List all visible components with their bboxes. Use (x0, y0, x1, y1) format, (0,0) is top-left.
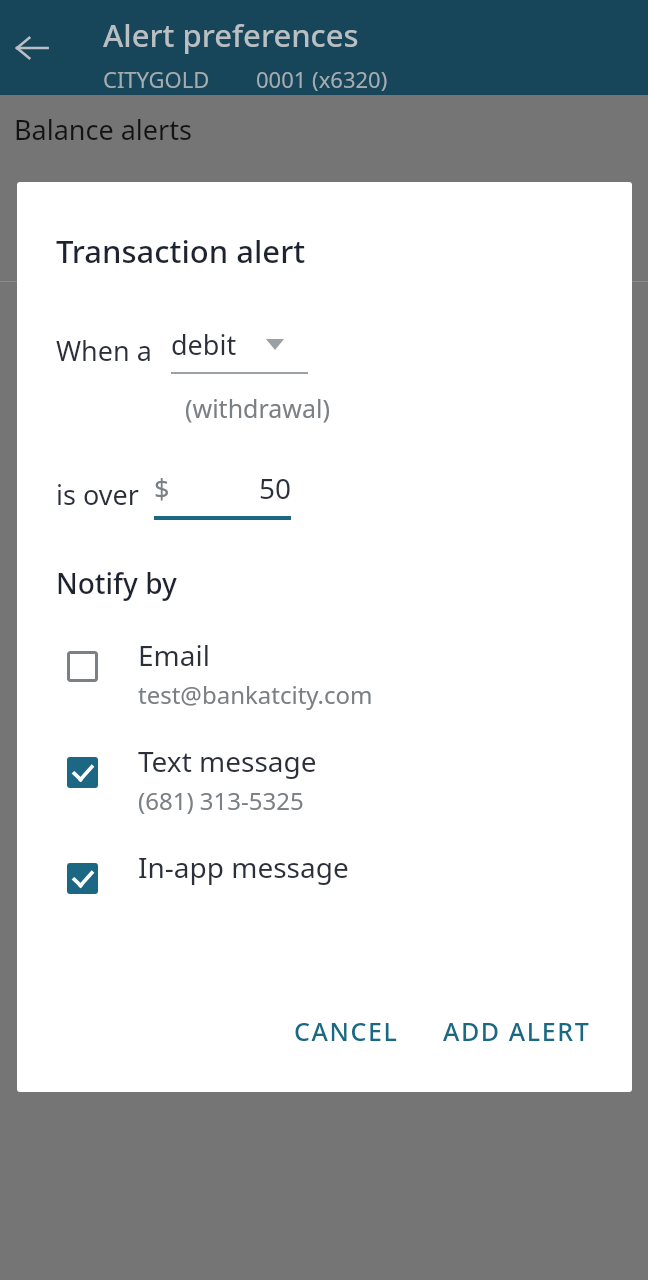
staticText: debit (171, 326, 237, 363)
staticText: CITYGOLD (103, 64, 210, 94)
staticText: is over (56, 476, 139, 513)
staticText: Text message (138, 742, 317, 780)
button[interactable]: Back (0, 16, 64, 80)
staticText: (681) 313-5325 (138, 784, 304, 817)
staticText: CANCEL (294, 1014, 399, 1048)
staticText: $ (154, 470, 170, 507)
staticText: 50 (170, 469, 291, 507)
staticText: test@bankatcity.com (138, 678, 373, 711)
staticText: Alert preferences (103, 14, 359, 56)
button[interactable]: Text message (17, 731, 632, 837)
button[interactable]: Email (17, 625, 632, 731)
staticText: Email (138, 636, 210, 674)
staticText: 0001 (x6320) (256, 64, 388, 94)
button[interactable]: debit (171, 326, 308, 374)
button[interactable]: ADD ALERT (425, 1000, 609, 1062)
button[interactable]: $ (154, 469, 291, 520)
staticText: Transaction alert (56, 230, 306, 272)
staticText: Balance alerts (14, 111, 192, 148)
staticText: In-app message (138, 848, 349, 886)
staticText: ADD ALERT (443, 1014, 591, 1048)
button[interactable]: In-app message (17, 837, 632, 943)
staticText: Notify by (56, 564, 177, 602)
staticText: When a (56, 332, 152, 369)
button[interactable]: CANCEL (276, 1000, 417, 1062)
staticText: (withdrawal) (185, 391, 330, 425)
